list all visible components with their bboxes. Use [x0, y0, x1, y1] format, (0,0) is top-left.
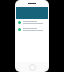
button[interactable] — [16, 26, 48, 33]
button[interactable] — [16, 19, 48, 26]
